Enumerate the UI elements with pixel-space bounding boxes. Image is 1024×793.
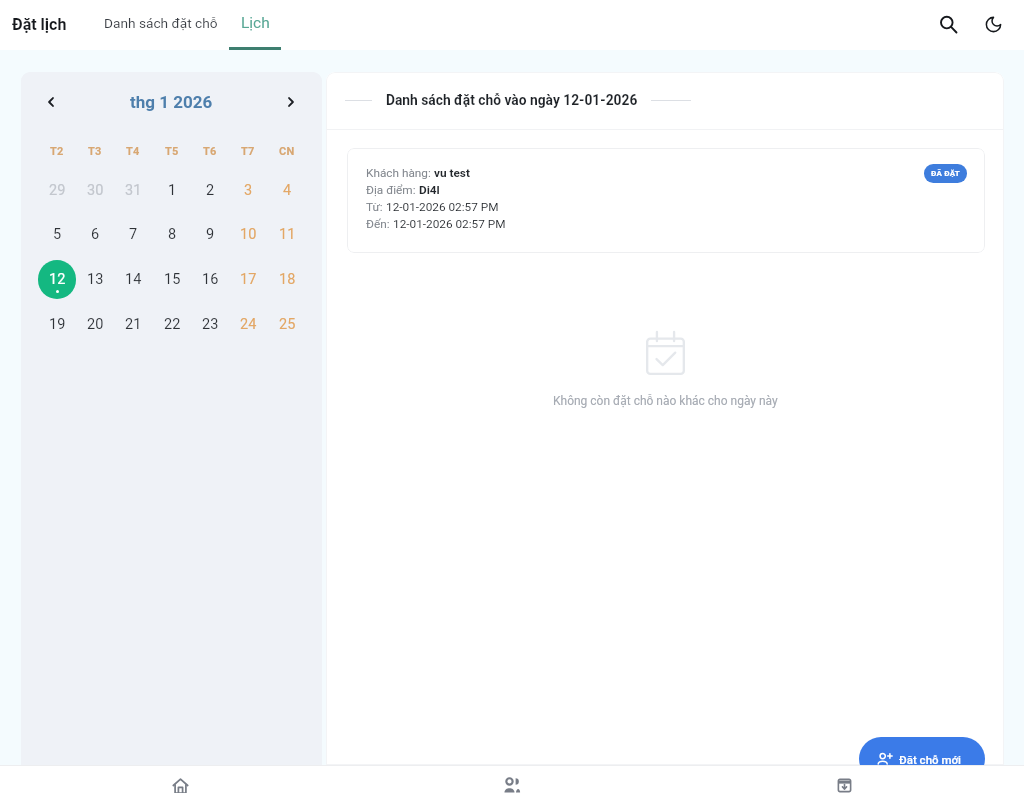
staticText: ĐÃ ĐẶT — [931, 169, 960, 178]
staticText: T6 — [203, 145, 217, 158]
button[interactable]: 11 — [268, 212, 306, 257]
staticText: 1 — [168, 182, 177, 199]
staticText: 10 — [240, 226, 257, 243]
button[interactable]: 30 — [76, 168, 114, 213]
button[interactable]: 1 — [153, 168, 191, 213]
staticText: Di4l — [419, 183, 440, 197]
button[interactable]: 29 — [38, 168, 76, 213]
staticText: Lịch — [241, 14, 270, 32]
button[interactable]: Toggle dark mode — [972, 3, 1014, 45]
button[interactable]: 22 — [153, 302, 191, 347]
button[interactable]: 10 — [229, 212, 267, 257]
staticText: CN — [279, 145, 295, 158]
button[interactable]: 5 — [38, 212, 76, 257]
staticText: Không còn đặt chỗ nào khác cho ngày này — [553, 394, 778, 408]
staticText: Khách hàng: — [366, 166, 434, 180]
button[interactable]: Previous month — [37, 88, 65, 116]
button[interactable]: Bookings — [678, 765, 1010, 793]
button[interactable]: 18 — [268, 257, 306, 302]
button[interactable]: 14 — [114, 257, 152, 302]
staticText: thg 1 2026 — [130, 92, 213, 112]
button[interactable]: 12 — [38, 257, 76, 302]
staticText: 12 — [49, 271, 66, 288]
staticText: 17 — [240, 271, 257, 288]
button[interactable]: 9 — [191, 212, 229, 257]
staticText: 2 — [206, 182, 215, 199]
button[interactable]: 4 — [268, 168, 306, 213]
button[interactable]: Search — [927, 3, 969, 45]
staticText: 12-01-2026 02:57 PM — [393, 217, 506, 231]
staticText: 13 — [87, 271, 104, 288]
staticText: 9 — [206, 226, 215, 243]
button[interactable]: Home — [14, 765, 346, 793]
staticText: 15 — [164, 271, 181, 288]
staticText: T2 — [50, 145, 64, 158]
button[interactable]: 21 — [114, 302, 152, 347]
staticText: Đặt chỗ mới — [899, 753, 962, 766]
staticText: 5 — [53, 226, 62, 243]
button[interactable]: 31 — [114, 168, 152, 213]
button[interactable]: Lịch — [229, 0, 281, 50]
staticText: 16 — [202, 271, 219, 288]
button[interactable]: 13 — [76, 257, 114, 302]
staticText: 11 — [279, 226, 296, 243]
staticText: vu test — [434, 166, 470, 180]
button[interactable]: 3 — [229, 168, 267, 213]
staticText: 18 — [279, 271, 296, 288]
button[interactable]: Customers — [346, 765, 678, 793]
staticText: 8 — [168, 226, 177, 243]
staticText: 12-01-2026 02:57 PM — [386, 200, 499, 214]
button[interactable]: 8 — [153, 212, 191, 257]
staticText: Đặt lịch — [12, 15, 67, 34]
button[interactable]: 2 — [191, 168, 229, 213]
staticText: 3 — [244, 182, 253, 199]
staticText: Danh sách đặt chỗ — [104, 15, 218, 31]
staticText: 22 — [164, 316, 181, 333]
staticText: 6 — [91, 226, 100, 243]
staticText: 25 — [279, 316, 296, 333]
staticText: Địa điểm: — [366, 183, 419, 197]
button[interactable]: Khách hàng: — [347, 148, 985, 253]
button[interactable]: 16 — [191, 257, 229, 302]
button[interactable]: 7 — [114, 212, 152, 257]
button[interactable]: Đặt lịch — [12, 15, 67, 34]
button[interactable]: 24 — [229, 302, 267, 347]
staticText: T3 — [88, 145, 102, 158]
button[interactable]: 17 — [229, 257, 267, 302]
button[interactable]: Next month — [277, 88, 305, 116]
staticText: T7 — [241, 145, 255, 158]
staticText: 29 — [49, 182, 66, 199]
staticText: 31 — [125, 182, 142, 199]
staticText: 20 — [87, 316, 104, 333]
button[interactable]: 23 — [191, 302, 229, 347]
staticText: 23 — [202, 316, 219, 333]
button[interactable]: Danh sách đặt chỗ — [100, 0, 222, 50]
button[interactable]: 6 — [76, 212, 114, 257]
staticText: 30 — [87, 182, 104, 199]
button[interactable]: 19 — [38, 302, 76, 347]
staticText: T4 — [126, 145, 140, 158]
button[interactable]: 15 — [153, 257, 191, 302]
staticText: Đến: — [366, 217, 393, 231]
button[interactable]: Đặt chỗ mới — [859, 737, 985, 781]
button[interactable]: 25 — [268, 302, 306, 347]
staticText: 21 — [125, 316, 142, 333]
staticText: 24 — [240, 316, 257, 333]
staticText: 14 — [125, 271, 142, 288]
staticText: 7 — [129, 226, 138, 243]
staticText: 19 — [49, 316, 66, 333]
staticText: Từ: — [366, 200, 386, 214]
staticText: 4 — [283, 182, 292, 199]
button[interactable]: 20 — [76, 302, 114, 347]
staticText: T5 — [165, 145, 179, 158]
staticText: Danh sách đặt chỗ vào ngày 12-01-2026 — [386, 92, 638, 108]
